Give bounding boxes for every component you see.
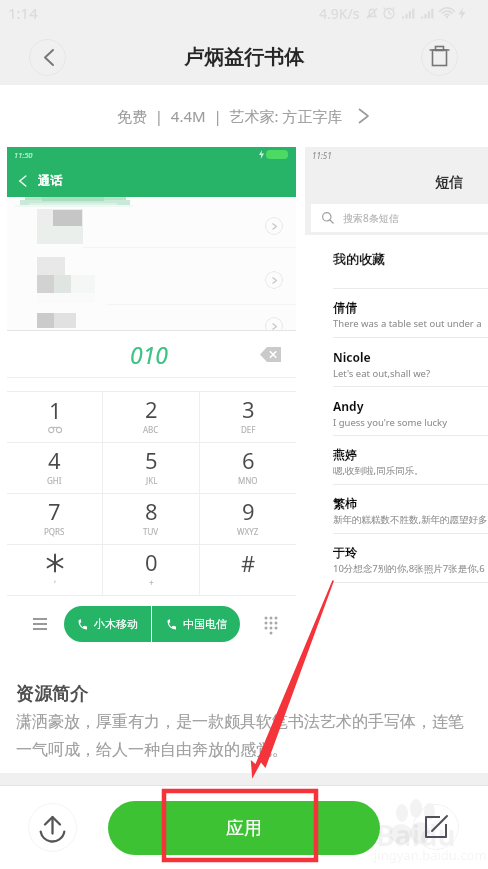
button[interactable]: Backspace <box>260 347 283 362</box>
button[interactable]: 燕婷 <box>333 436 488 485</box>
button[interactable]: , <box>7 545 102 595</box>
staticText: MNO <box>238 475 258 486</box>
button[interactable]: 3 <box>200 392 296 442</box>
staticText: 1 <box>49 395 62 425</box>
staticText: 于玲 <box>333 545 357 560</box>
staticText: I guess you're some lucky guy,Stephanie … <box>333 416 488 429</box>
staticText: TUV <box>143 526 159 537</box>
button[interactable]: Share <box>28 803 77 852</box>
button[interactable]: 4 <box>7 443 102 493</box>
staticText: 燕婷 <box>333 447 357 462</box>
button[interactable]: 免费 | 4.4M | 艺术家: 方正字库 <box>117 106 371 126</box>
button[interactable]: 繁柿 <box>333 485 488 534</box>
staticText: 11:51 <box>312 150 332 161</box>
button[interactable]: Back <box>29 39 66 76</box>
button[interactable]: 中国电信 <box>152 606 240 642</box>
staticText: 7 <box>48 496 61 526</box>
button[interactable]: 2 <box>103 392 199 442</box>
staticText: jingyan.baidu.com <box>374 846 487 864</box>
staticText: 10分想念7别的你,8张照片7张是你,6天,小 <box>333 562 488 575</box>
staticText: 0 <box>145 547 158 577</box>
staticText: 9 <box>242 496 255 526</box>
staticText: 潇洒豪放，厚重有力，是一款颇具软笔书法艺术的手写体，连笔一气呵成，给人一种自由奔… <box>16 712 474 760</box>
button[interactable]: Nicole <box>333 338 488 387</box>
staticText: 11:50 <box>14 150 33 160</box>
staticText: , <box>54 573 57 584</box>
staticText: 搜索8条短信 <box>343 211 399 225</box>
button[interactable]: 于玲 <box>333 534 488 583</box>
staticText: Baidu <box>376 816 456 854</box>
button[interactable]: 倩倩 <box>333 289 488 338</box>
staticText: 繁柿 <box>333 496 357 511</box>
staticText: + <box>149 577 154 588</box>
staticText: 中国电信 <box>183 617 227 631</box>
button[interactable]: Menu <box>33 618 47 630</box>
button[interactable]: Delete <box>421 39 458 76</box>
button[interactable]: 8 <box>103 494 199 544</box>
staticText: PQRS <box>44 526 65 537</box>
staticText: 卢炳益行书体 <box>184 45 304 70</box>
staticText: 通话 <box>38 173 62 188</box>
staticText: 倩倩 <box>333 300 357 315</box>
button[interactable]: Edit <box>413 804 459 850</box>
button[interactable]: 应用 <box>108 801 380 855</box>
staticText: # <box>241 548 256 578</box>
button[interactable]: 7 <box>7 494 102 544</box>
staticText: 6 <box>242 445 255 475</box>
staticText: 短信 <box>435 174 463 192</box>
staticText: 4.9K/s <box>319 4 360 23</box>
staticText: 010 <box>130 339 169 370</box>
button[interactable]: 5 <box>103 443 199 493</box>
staticText: 免费 | 4.4M | 艺术家: 方正字库 <box>117 106 343 126</box>
staticText: 我的收藏 <box>333 251 385 267</box>
staticText: 小木移动 <box>94 617 138 631</box>
button[interactable]: Andy <box>333 387 488 436</box>
staticText: 应用 <box>226 817 262 840</box>
button[interactable]: Dialpad <box>264 616 278 632</box>
button[interactable]: 6 <box>200 443 296 493</box>
staticText: JKL <box>146 475 158 486</box>
staticText: WXYZ <box>237 526 259 537</box>
staticText: GHI <box>47 475 62 486</box>
staticText: 嗯,收到啦,同乐同乐。 <box>333 464 424 477</box>
staticText: Let's eat out,shall we? <box>333 367 431 380</box>
staticText: Nicole <box>333 349 371 365</box>
staticText: 新年的糕糕数不胜数,新年的愿望好多好 <box>333 513 488 526</box>
staticText: 5 <box>145 445 158 475</box>
staticText: 1:14 <box>8 3 38 23</box>
staticText: 2 <box>145 394 158 424</box>
button[interactable]: 小木移动 <box>64 606 151 642</box>
button[interactable]: 1 <box>7 392 102 442</box>
staticText: Andy <box>333 398 364 414</box>
button[interactable]: 9 <box>200 494 296 544</box>
button[interactable]: 0 <box>103 545 199 595</box>
staticText: DEF <box>241 424 256 435</box>
staticText: 4 <box>48 445 61 475</box>
staticText: 3 <box>242 394 255 424</box>
staticText: 资源简介 <box>16 683 88 706</box>
staticText: There was a table set out under a tree i… <box>333 317 488 330</box>
staticText: 8 <box>145 496 158 526</box>
staticText: ABC <box>143 424 159 435</box>
button[interactable]: # <box>200 545 296 595</box>
